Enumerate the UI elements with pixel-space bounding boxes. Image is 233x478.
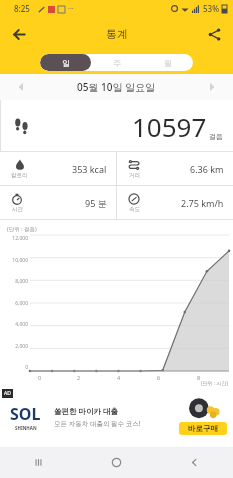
staticText: 95 분 <box>85 197 107 209</box>
staticText: 05월 10일 일요일 <box>77 80 156 94</box>
staticText: (단위 : 걸음) <box>7 225 37 233</box>
staticText: 53% <box>203 3 219 14</box>
staticText: 2,000 <box>15 343 28 350</box>
staticText: 8,000 <box>15 278 28 285</box>
staticText: SOL <box>10 403 41 425</box>
staticText: 칼로리 <box>11 172 28 179</box>
staticText: 8:25 <box>14 3 30 14</box>
staticText: AD <box>4 390 11 397</box>
staticText: 쏠편한 마이카 대출 <box>54 406 118 416</box>
button[interactable]: 거리 <box>117 152 233 185</box>
button[interactable]: 속도 <box>117 186 233 219</box>
staticText: 6,000 <box>15 300 28 307</box>
staticText: 2.75 km/h <box>181 197 224 209</box>
staticText: 6.36 km <box>190 163 224 175</box>
button[interactable]: Next day <box>201 76 223 98</box>
staticText: 10597 <box>132 109 207 144</box>
staticText: 4,000 <box>15 321 28 328</box>
button[interactable]: Recents <box>0 447 77 478</box>
staticText: 12,000 <box>12 235 28 242</box>
staticText: 시간 <box>12 206 23 213</box>
button[interactable]: 월 <box>142 54 193 71</box>
staticText: 0 <box>38 374 42 381</box>
staticText: (단위 : 시간) <box>201 380 228 387</box>
staticText: 주 <box>113 58 121 68</box>
staticText: 걸음 <box>209 132 223 141</box>
staticText: SHINHAN <box>15 425 37 431</box>
button[interactable]: 시간 <box>0 186 116 219</box>
staticText: 0 <box>25 364 28 371</box>
button[interactable]: Home <box>77 447 155 478</box>
button[interactable]: 주 <box>91 54 142 71</box>
staticText: 모든 자동차 대출의 필수 코스! <box>54 419 141 428</box>
button[interactable]: 바로구매 <box>188 424 218 433</box>
staticText: 6 <box>157 374 161 381</box>
staticText: 일 <box>62 58 70 68</box>
button[interactable]: 칼로리 <box>0 152 116 185</box>
button[interactable]: Back <box>6 21 32 47</box>
staticText: 통계 <box>106 27 128 41</box>
staticText: 10,000 <box>12 257 28 264</box>
button[interactable]: Back <box>155 447 233 478</box>
button[interactable]: Previous day <box>10 76 32 98</box>
staticText: 바로구매 <box>188 424 218 433</box>
staticText: 거리 <box>129 172 140 179</box>
staticText: 8 <box>197 374 201 381</box>
button[interactable]: 일 <box>40 54 91 71</box>
staticText: 4 <box>117 374 121 381</box>
staticText: 월 <box>164 58 172 68</box>
button[interactable]: AD <box>0 387 233 447</box>
staticText: 속도 <box>129 206 140 213</box>
staticText: 353 kcal <box>72 163 107 175</box>
staticText: ··· <box>68 4 74 14</box>
button[interactable]: Share <box>201 21 227 47</box>
staticText: 2 <box>77 374 81 381</box>
